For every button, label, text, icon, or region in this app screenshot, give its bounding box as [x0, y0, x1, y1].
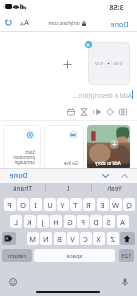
- button[interactable]: Price: [105, 107, 115, 117]
- button[interactable]: B: [54, 232, 66, 245]
- button[interactable]: Done: [7, 169, 30, 183]
- button[interactable]: Yeah: [92, 183, 137, 194]
- button[interactable]: Emoji: [8, 276, 19, 287]
- button[interactable]: Backspace: [2, 232, 16, 245]
- staticText: H: [53, 217, 59, 227]
- button[interactable]: J: [37, 215, 49, 228]
- staticText: D: [93, 217, 99, 227]
- button[interactable]: Start promotion campaign: [3, 125, 41, 169]
- staticText: W: [112, 200, 119, 210]
- button[interactable]: Media: [118, 107, 128, 117]
- staticText: Done: [110, 19, 129, 29]
- staticText: Q: [126, 200, 132, 210]
- button[interactable]: Reload: [4, 17, 14, 27]
- button[interactable]: P: [4, 198, 16, 211]
- staticText: Z: [110, 234, 115, 244]
- staticText: return: [8, 252, 26, 260]
- button[interactable]: Z: [107, 232, 119, 245]
- button[interactable]: Previous field: [120, 171, 130, 181]
- button[interactable]: Q: [123, 198, 135, 211]
- button[interactable]: return: [2, 249, 32, 262]
- staticText: C: [83, 234, 88, 244]
- button[interactable]: C: [80, 232, 92, 245]
- staticText: onlyfans.com: [48, 20, 80, 27]
- button[interactable]: Y: [57, 198, 69, 211]
- staticText: L: [14, 217, 18, 227]
- button[interactable]: H: [50, 215, 62, 228]
- staticText: F: [81, 217, 85, 227]
- button[interactable]: A: [117, 215, 129, 228]
- staticText: Y: [60, 200, 65, 210]
- staticText: B: [57, 234, 62, 244]
- staticText: A: [24, 17, 29, 27]
- button[interactable]: L: [10, 215, 22, 228]
- button[interactable]: F: [77, 215, 89, 228]
- button[interactable]: Shift: [120, 232, 135, 245]
- button[interactable]: Add media: [59, 56, 76, 73]
- button[interactable]: N: [40, 232, 52, 245]
- staticText: A: [120, 217, 125, 227]
- button[interactable]: M: [27, 232, 39, 245]
- staticText: E: [100, 200, 105, 210]
- button[interactable]: X: [93, 232, 105, 245]
- staticText: T: [73, 200, 78, 210]
- button[interactable]: Next field: [101, 171, 111, 181]
- staticText: 0:02: [95, 61, 103, 66]
- button[interactable]: Thank: [0, 183, 45, 194]
- staticText: Add to story: [95, 160, 121, 166]
- button[interactable]: R: [83, 198, 95, 211]
- button[interactable]: O: [17, 198, 29, 211]
- staticText: I: [34, 200, 37, 210]
- staticText: 0:00: [114, 61, 122, 66]
- button[interactable]: W: [110, 198, 122, 211]
- button[interactable]: Audio: [92, 107, 102, 117]
- button[interactable]: T: [70, 198, 82, 211]
- staticText: U: [47, 200, 53, 210]
- staticText: Yeah: [107, 184, 122, 193]
- staticText: K: [27, 217, 32, 227]
- button[interactable]: I: [30, 198, 42, 211]
- staticText: X: [96, 234, 101, 244]
- staticText: S: [106, 217, 111, 227]
- button[interactable]: V: [67, 232, 79, 245]
- staticText: Go live: [64, 160, 78, 166]
- button[interactable]: Dictate: [120, 276, 131, 287]
- staticText: J: [41, 217, 44, 227]
- button[interactable]: Add to story: [110, 140, 119, 149]
- staticText: Add a description...: [73, 91, 132, 100]
- staticText: V: [70, 234, 75, 244]
- staticText: N: [43, 234, 49, 244]
- staticText: I: [67, 184, 70, 193]
- staticText: Done: [9, 171, 28, 181]
- staticText: O: [20, 200, 26, 210]
- button[interactable]: K: [24, 215, 36, 228]
- staticText: A: [20, 20, 24, 27]
- button[interactable]: Done: [108, 17, 131, 31]
- button[interactable]: Schedule: [66, 107, 76, 117]
- button[interactable]: G: [64, 215, 76, 228]
- button[interactable]: S: [103, 215, 115, 228]
- button[interactable]: E: [97, 198, 109, 211]
- staticText: 123: [121, 252, 132, 260]
- staticText: Thank: [13, 184, 32, 193]
- staticText: Start promotion campaign: [13, 149, 35, 166]
- button[interactable]: Text size: [18, 17, 31, 27]
- button[interactable]: Remove attachment: [85, 41, 92, 48]
- staticText: R: [86, 200, 91, 210]
- button[interactable]: I: [46, 183, 91, 194]
- staticText: 3:58: [109, 2, 124, 12]
- button[interactable]: 123: [119, 249, 134, 262]
- button[interactable]: D: [90, 215, 102, 228]
- button[interactable]: space: [34, 249, 115, 262]
- staticText: P: [7, 200, 12, 210]
- button[interactable]: Expire: [79, 107, 89, 117]
- staticText: space: [66, 252, 83, 260]
- staticText: G: [67, 217, 73, 227]
- button[interactable]: U: [44, 198, 56, 211]
- staticText: M: [29, 234, 36, 244]
- button[interactable]: Add to story: [87, 125, 130, 169]
- button[interactable]: Go live: [44, 125, 84, 169]
